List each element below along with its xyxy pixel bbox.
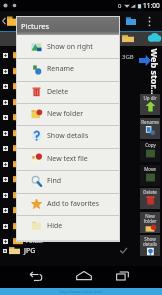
staticText: Move [144,166,156,172]
button[interactable]: Show details [17,125,119,147]
staticText: Folder [26,67,44,75]
staticText: New text file [47,154,88,164]
button[interactable]: Folder [0,47,162,63]
staticText: Delete [143,189,157,195]
staticText: Show details [140,236,160,247]
button[interactable]: Home [72,264,96,286]
staticText: Folder [26,113,44,121]
staticText: Hide [47,221,63,231]
button[interactable]: Folder [0,109,162,125]
button[interactable]: Folder [0,78,162,94]
button[interactable]: Folder [0,218,162,234]
staticText: Folder [26,222,44,230]
staticText: 11:00 [143,1,160,10]
button[interactable]: Recents [110,265,134,287]
button[interactable]: Folder [0,202,162,218]
staticText: Folder [26,82,44,90]
button[interactable]: Rename [140,118,160,139]
staticText: Show on right [47,42,93,52]
staticText: New folder [140,213,160,224]
staticText: Add to favorites [47,199,100,209]
button[interactable]: Folder [0,125,162,141]
staticText: 3GB [122,53,134,61]
staticText: Find [47,176,62,186]
button[interactable]: More options [144,14,154,28]
button[interactable]: Folder [0,94,162,110]
staticText: Folder [26,175,44,183]
button[interactable]: Delete [17,81,119,103]
staticText: New folder [47,109,84,119]
button[interactable]: Back [23,264,47,286]
button[interactable]: Find [17,170,119,192]
staticText: Folder [26,98,44,106]
button[interactable]: Up [2,14,18,27]
button[interactable]: Rename [17,58,119,80]
staticText: 0 [118,2,122,10]
staticText: Folder [26,237,44,245]
staticText: Pictures [21,21,50,31]
button[interactable]: New folder [17,103,119,125]
staticText: http://www.xxpsu.com/ [59,289,103,294]
staticText: Folder [26,144,44,152]
staticText: Rename [47,64,75,74]
button[interactable]: New text file [17,148,119,170]
button[interactable]: Add to favorites [17,193,119,215]
staticText: Delete [47,87,69,97]
staticText: Folder [26,51,44,59]
button[interactable]: Delete [140,188,160,209]
button[interactable]: Move [140,165,160,186]
button[interactable]: Copy [140,141,160,162]
button[interactable]: Folder [0,156,162,172]
staticText: Folder [26,191,44,199]
button[interactable]: Folder [0,187,162,203]
button[interactable]: Show details [140,235,160,256]
staticText: Show details [47,131,89,141]
button[interactable]: Folder [0,171,162,187]
staticText: Web stor... [148,48,160,95]
button[interactable]: Show on right [17,36,119,58]
staticText: Copy [145,142,156,148]
staticText: Folder [26,206,44,214]
button[interactable]: Folder [0,140,162,156]
staticText: Up dir [143,95,157,101]
staticText: JPG [24,246,36,256]
button[interactable]: Hide [17,215,119,237]
button[interactable]: New folder [140,212,160,233]
button[interactable]: Folder [0,63,162,79]
staticText: Folder [26,129,44,137]
button[interactable]: Up dir [140,94,160,115]
button[interactable]: JPG [0,243,162,258]
button[interactable]: Folder [0,233,162,249]
staticText: Folder [26,160,44,168]
staticText: Rename [141,119,159,125]
